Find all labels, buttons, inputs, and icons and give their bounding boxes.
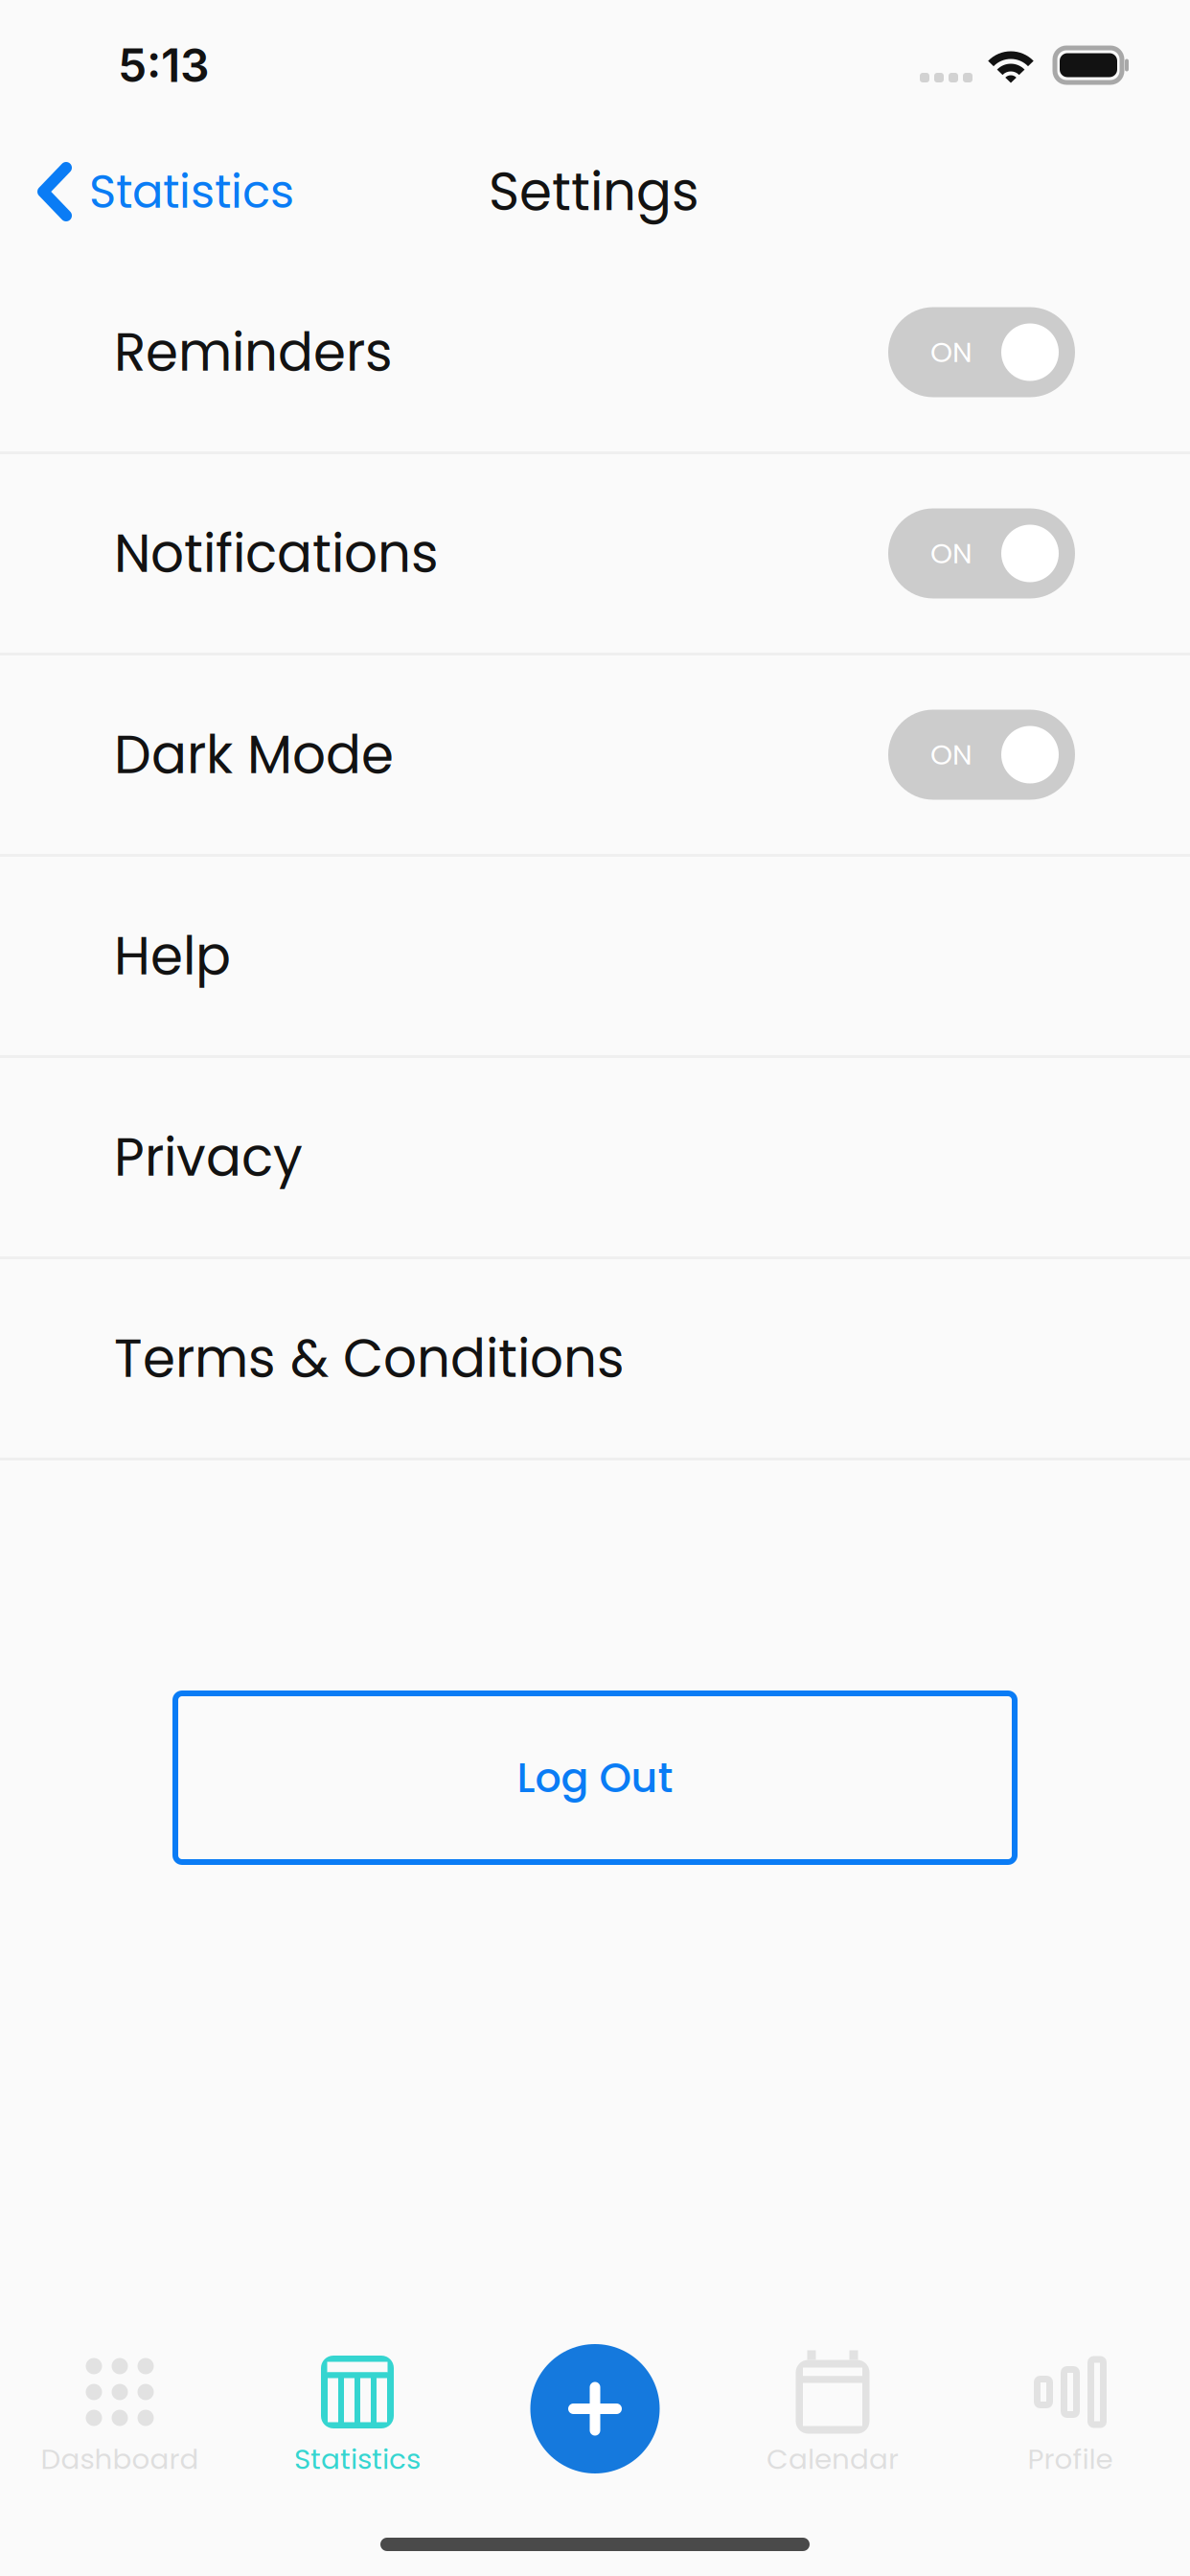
button[interactable]: Add	[476, 2346, 714, 2480]
button[interactable]: Privacy	[0, 1058, 1190, 1256]
button[interactable]: Dashboard	[1, 2346, 239, 2480]
button[interactable]: Statistics	[239, 2346, 476, 2480]
button[interactable]: Notifications	[0, 454, 1190, 653]
staticText: Statistics	[294, 2439, 421, 2479]
button[interactable]: Log Out	[175, 1693, 1015, 1862]
staticText: Settings	[489, 155, 699, 228]
staticText: Dark Mode	[114, 718, 394, 791]
button[interactable]: Calendar	[714, 2346, 951, 2480]
button[interactable]: Dark Mode	[0, 655, 1190, 854]
staticText: Dashboard	[41, 2439, 199, 2479]
staticText: ON	[930, 735, 973, 774]
button[interactable]: Terms & Conditions	[0, 1259, 1190, 1458]
staticText: Help	[114, 919, 231, 993]
staticText: Statistics	[89, 159, 294, 224]
staticText: ON	[930, 333, 973, 372]
staticText: ON	[930, 534, 973, 573]
staticText: Log Out	[517, 1749, 673, 1806]
staticText: Privacy	[114, 1120, 303, 1194]
staticText: Reminders	[114, 315, 393, 389]
button[interactable]: Help	[0, 857, 1190, 1055]
button[interactable]: Statistics	[0, 144, 294, 239]
staticText: Calendar	[767, 2439, 899, 2479]
button[interactable]: Profile	[951, 2346, 1189, 2480]
staticText: Profile	[1028, 2439, 1113, 2479]
staticText: Notifications	[114, 517, 439, 590]
staticText: Terms & Conditions	[114, 1322, 625, 1395]
staticText: 5:13	[118, 37, 210, 93]
button[interactable]: Reminders	[0, 253, 1190, 451]
